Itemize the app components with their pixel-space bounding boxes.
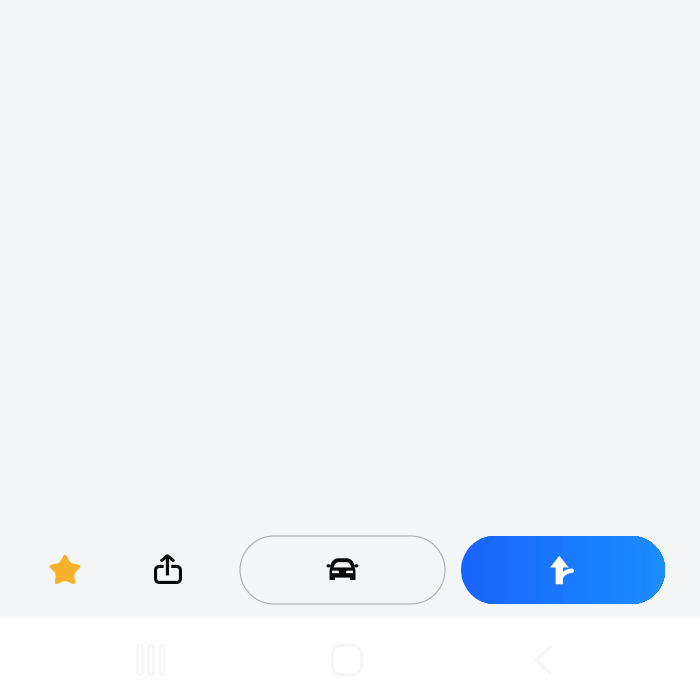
button[interactable]: Directions bbox=[461, 536, 665, 604]
button[interactable]: Favorite bbox=[29, 534, 101, 606]
button[interactable]: Share bbox=[132, 533, 204, 605]
button[interactable]: Drive bbox=[240, 536, 445, 604]
